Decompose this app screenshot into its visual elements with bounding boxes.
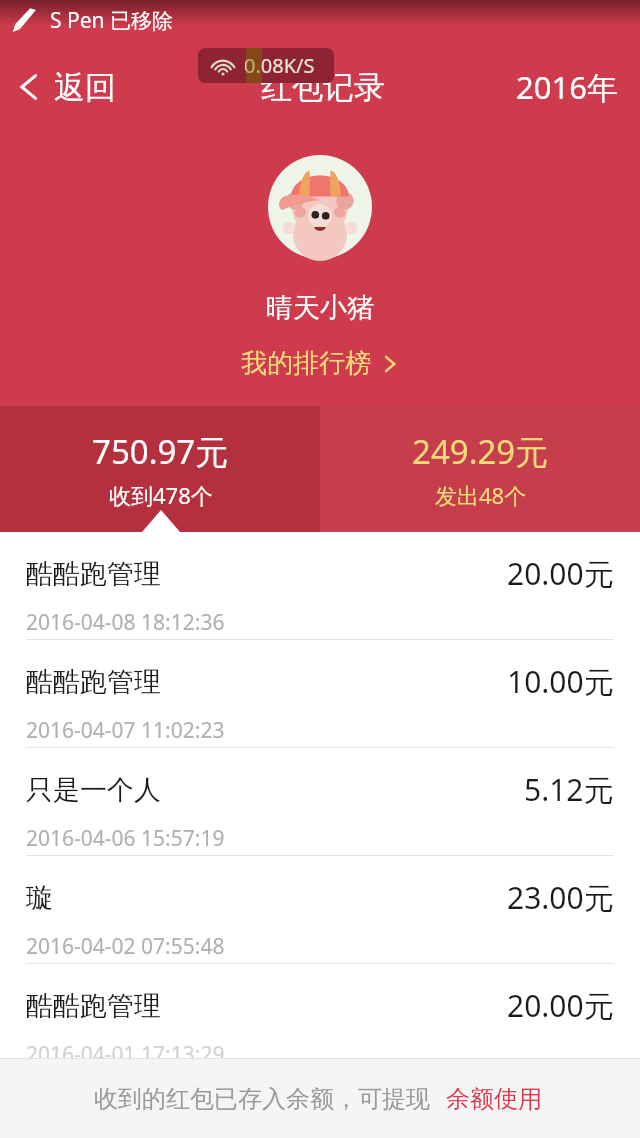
staticText: 5.12元 (524, 769, 614, 810)
staticText: 249.29元 (412, 429, 549, 474)
staticText: 2016-04-08 18:12:36 (26, 608, 225, 637)
button[interactable]: 酷酷跑管理 (0, 532, 640, 639)
staticText: 晴天小猪 (266, 291, 374, 325)
staticText: 酷酷跑管理 (26, 665, 161, 699)
other: Back (14, 72, 44, 102)
staticText: 酷酷跑管理 (26, 989, 161, 1023)
staticText: 750.97元 (92, 429, 229, 474)
button[interactable]: 750.97元 (0, 406, 320, 532)
button[interactable]: 2016年 (516, 66, 640, 108)
staticText: 20.00元 (507, 553, 614, 594)
button[interactable]: 璇 (0, 856, 640, 963)
staticText: 2016-04-01 17:13:29 (26, 1040, 225, 1069)
button[interactable]: Back (0, 56, 130, 118)
staticText: 2016-04-02 07:55:48 (26, 932, 225, 961)
button[interactable]: 只是一个人 (0, 748, 640, 855)
staticText: 璇 (26, 881, 53, 915)
staticText: 酷酷跑管理 (26, 557, 161, 591)
staticText: 10.00元 (507, 661, 614, 702)
staticText: 23.00元 (507, 877, 614, 918)
staticText: 发出48个 (435, 480, 527, 510)
staticText: 2016-04-07 11:02:23 (26, 716, 225, 745)
staticText: 只是一个人 (26, 773, 161, 807)
other: S Pen (12, 7, 38, 33)
button[interactable]: 酷酷跑管理 (0, 964, 640, 1071)
staticText: S Pen 已移除 (50, 6, 173, 35)
staticText: 收到的红包已存入余额，可提现 (94, 1084, 430, 1114)
staticText: 返回 (54, 68, 116, 107)
staticText: 红包记录 (261, 68, 385, 107)
staticText: 我的排行榜 (241, 347, 371, 380)
button[interactable]: 249.29元 (320, 406, 640, 532)
button[interactable]: 余额使用 (442, 1076, 546, 1122)
staticText: 收到478个 (109, 480, 213, 510)
other: Wi-Fi (212, 55, 234, 77)
staticText: 0.08K/S (244, 52, 315, 79)
staticText: 2016-04-06 15:57:19 (26, 824, 225, 853)
staticText: 20.00元 (507, 985, 614, 1026)
button[interactable]: 我的排行榜 (229, 343, 411, 384)
button[interactable]: 酷酷跑管理 (0, 640, 640, 747)
